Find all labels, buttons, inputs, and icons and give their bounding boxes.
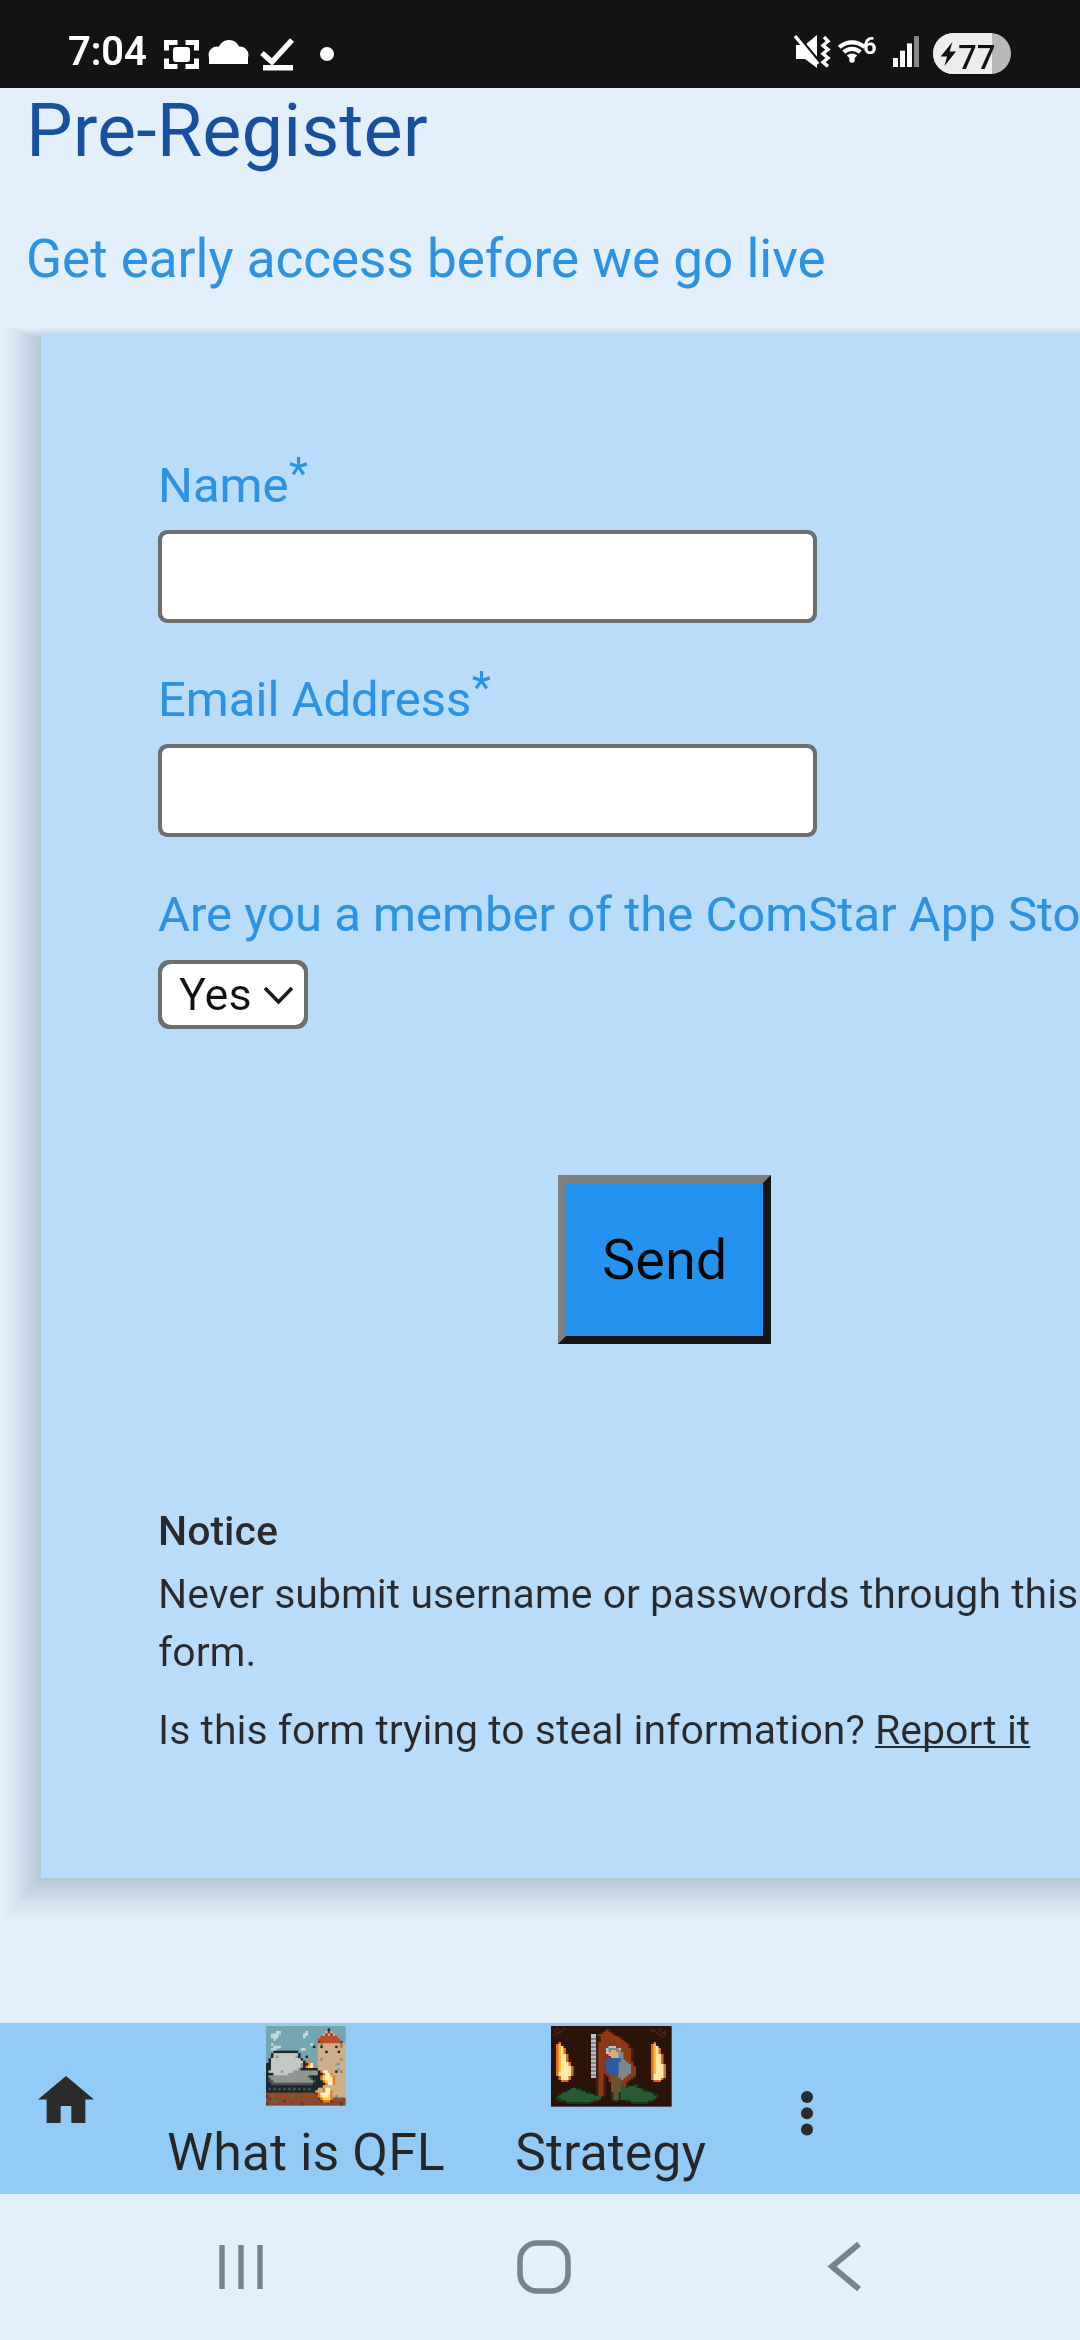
button[interactable]: Recent apps bbox=[186, 2212, 296, 2322]
button[interactable]: Yes bbox=[162, 964, 304, 1025]
staticText: What is QFL bbox=[167, 2122, 445, 2183]
button[interactable]: Back bbox=[791, 2217, 901, 2317]
staticText: Is this form trying to steal information… bbox=[158, 1706, 875, 1754]
button[interactable]: More options bbox=[758, 2041, 854, 2177]
button[interactable]: Home bbox=[489, 2217, 599, 2317]
staticText: Never submit username or passwords throu… bbox=[158, 1570, 1080, 1676]
staticText: Notice bbox=[158, 1507, 279, 1555]
button[interactable] bbox=[162, 748, 813, 833]
button[interactable]: Strategy bbox=[505, 2023, 717, 2194]
staticText: 77 bbox=[958, 38, 996, 74]
staticText: Yes bbox=[179, 968, 252, 1021]
staticText: * bbox=[472, 662, 491, 714]
staticText: 7:04 bbox=[68, 28, 147, 75]
staticText: Pre-Register bbox=[26, 87, 428, 174]
staticText: Strategy bbox=[515, 2122, 707, 2183]
button[interactable] bbox=[162, 534, 813, 619]
staticText: 6 bbox=[863, 32, 877, 60]
button[interactable]: Report it bbox=[875, 1706, 1031, 1754]
staticText: Get early access before we go live bbox=[26, 228, 826, 290]
staticText: Send bbox=[602, 1227, 728, 1293]
button[interactable]: Home bbox=[26, 2059, 106, 2139]
button[interactable]: Send bbox=[558, 1175, 771, 1344]
staticText: Name bbox=[158, 457, 289, 514]
button[interactable]: What is QFL bbox=[160, 2023, 452, 2194]
staticText: Email Address bbox=[158, 671, 472, 728]
staticText: Are you a member of the ComStar App Stor… bbox=[158, 886, 1080, 943]
staticText: * bbox=[289, 448, 308, 500]
